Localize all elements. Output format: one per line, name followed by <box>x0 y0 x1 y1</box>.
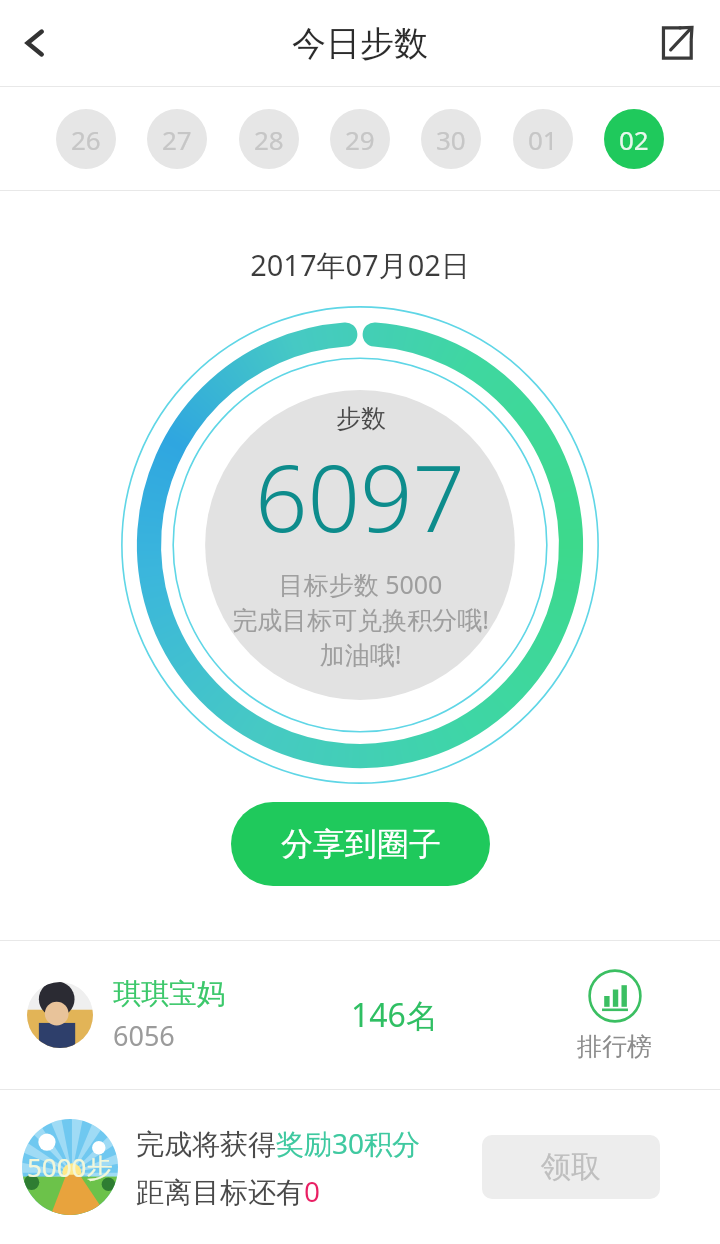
staticText: 29 <box>345 122 375 157</box>
staticText: 02 <box>619 122 649 157</box>
button[interactable]: 01 <box>513 109 573 169</box>
button[interactable]: 领取 <box>482 1135 660 1199</box>
staticText: 领取 <box>541 1148 601 1186</box>
staticText: 目标步数 5000 完成目标可兑换积分哦! 加油哦! <box>232 567 489 671</box>
button[interactable]: 26 <box>56 109 116 169</box>
staticText: 琪琪宝妈 <box>113 976 225 1011</box>
staticText: 分享到圈子 <box>281 824 441 864</box>
staticText: 6097 <box>255 434 466 559</box>
staticText: 完成将获得奖励30积分 <box>136 1124 421 1162</box>
staticText: 步数 <box>336 403 386 434</box>
staticText: 今日步数 <box>292 22 428 65</box>
button[interactable]: 排行榜 <box>577 969 652 1062</box>
staticText: 6056 <box>113 1017 175 1054</box>
staticText: 5000步 <box>27 1149 113 1185</box>
staticText: 距离目标还有0 <box>136 1172 321 1210</box>
staticText: 30 <box>436 122 466 157</box>
staticText: 146名 <box>351 993 438 1037</box>
button[interactable]: 27 <box>147 109 207 169</box>
button[interactable]: 琪琪宝妈 <box>0 941 720 1089</box>
button[interactable]: 29 <box>330 109 390 169</box>
button[interactable]: 28 <box>239 109 299 169</box>
staticText: 27 <box>162 122 192 157</box>
staticText: 01 <box>528 122 558 157</box>
button[interactable]: Back <box>0 7 72 79</box>
button[interactable]: 30 <box>421 109 481 169</box>
staticText: 2017年07月02日 <box>0 245 720 285</box>
button[interactable]: 分享到圈子 <box>231 802 490 886</box>
staticText: 26 <box>71 122 101 157</box>
staticText: 排行榜 <box>577 1031 652 1062</box>
button[interactable]: Share <box>648 15 704 71</box>
button[interactable]: 02 <box>604 109 664 169</box>
staticText: 28 <box>254 122 284 157</box>
